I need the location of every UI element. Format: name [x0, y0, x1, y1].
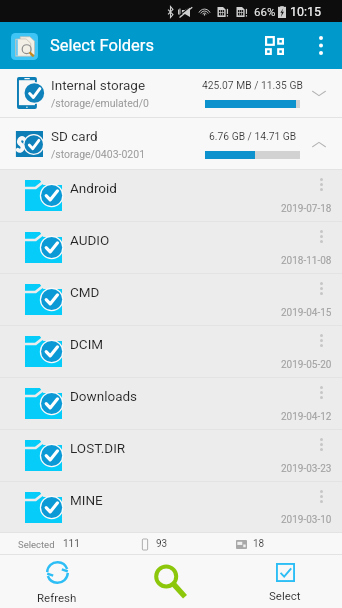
staticText: /storage/emulated/0	[51, 97, 149, 109]
staticText: 2018-11-08	[281, 255, 332, 267]
staticText: Internal storage	[51, 77, 146, 93]
staticText: 425.07 MB / 11.35 GB	[202, 79, 303, 91]
staticText: 2019-07-18	[281, 203, 332, 215]
button[interactable]: Expand	[305, 79, 333, 107]
staticText: MINE	[70, 492, 103, 508]
staticText: Refresh	[37, 591, 77, 604]
button[interactable]: Downloads	[0, 378, 342, 429]
button[interactable]: AUDIO	[0, 222, 342, 273]
staticText: 18	[253, 538, 265, 550]
button[interactable]: Refresh	[0, 555, 114, 608]
button[interactable]: Item options	[314, 228, 328, 245]
staticText: 111	[63, 538, 80, 550]
button[interactable]: Grid view	[248, 22, 300, 69]
button[interactable]: Select	[228, 555, 342, 608]
staticText: DCIM	[70, 336, 104, 352]
staticText: 93	[156, 538, 168, 550]
staticText: 66%	[254, 5, 276, 18]
button[interactable]: Item options	[314, 436, 328, 453]
staticText: 2019-05-20	[281, 359, 332, 371]
button[interactable]: Internal storage	[0, 69, 342, 117]
button[interactable]: LOST.DIR	[0, 430, 342, 481]
button[interactable]: SD card	[0, 118, 342, 169]
staticText: Select Folders	[50, 36, 154, 55]
staticText: 2019-03-23	[281, 463, 332, 475]
staticText: 2019-04-12	[281, 411, 332, 423]
staticText: SD card	[51, 128, 98, 144]
button[interactable]: CMD	[0, 274, 342, 325]
staticText: 10:15	[290, 4, 322, 19]
button[interactable]: MINE	[0, 482, 342, 532]
button[interactable]: Collapse	[305, 130, 333, 158]
button[interactable]: DCIM	[0, 326, 342, 377]
button[interactable]: Item options	[314, 384, 328, 401]
staticText: AUDIO	[70, 232, 110, 248]
staticText: 6.76 GB / 14.71 GB	[209, 130, 297, 142]
staticText: CMD	[70, 284, 100, 300]
button[interactable]: Item options	[314, 280, 328, 297]
staticText: 2019-04-15	[281, 307, 332, 319]
button[interactable]: More options	[300, 22, 342, 69]
staticText: LOST.DIR	[70, 440, 126, 456]
button[interactable]: Android	[0, 170, 342, 221]
button[interactable]: Item options	[314, 488, 328, 505]
button[interactable]: App icon	[9, 31, 39, 61]
button[interactable]: Search	[114, 555, 228, 608]
button[interactable]: Item options	[314, 332, 328, 349]
staticText: Android	[70, 180, 117, 196]
staticText: Select	[269, 589, 301, 602]
staticText: /storage/0403-0201	[51, 148, 146, 160]
staticText: 2019-03-10	[281, 514, 332, 526]
button[interactable]: Item options	[314, 176, 328, 193]
staticText: Selected	[18, 539, 55, 550]
staticText: Downloads	[70, 388, 138, 404]
